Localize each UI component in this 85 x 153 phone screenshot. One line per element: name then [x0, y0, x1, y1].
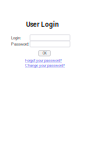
staticText: OK — [42, 51, 46, 55]
button[interactable]: Forgot your password? — [25, 58, 62, 63]
staticText: Login: — [11, 35, 21, 40]
button[interactable]: OK — [38, 50, 50, 56]
staticText: Password: — [11, 42, 29, 46]
button[interactable]: Password — [30, 41, 70, 47]
button[interactable]: Login — [30, 35, 70, 41]
staticText: Forgot your password? — [25, 58, 62, 63]
staticText: User Login — [26, 20, 59, 28]
staticText: Change your password? — [25, 63, 65, 68]
button[interactable]: Change your password? — [25, 63, 65, 68]
